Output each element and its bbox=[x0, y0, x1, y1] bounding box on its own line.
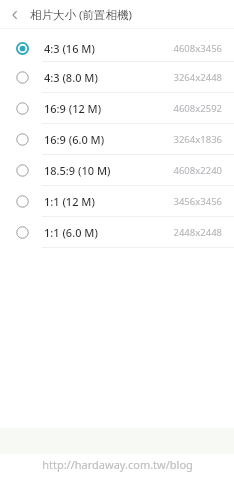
button[interactable]: 1:1 (12 M) bbox=[0, 186, 234, 217]
staticText: 4:3 (16 M) bbox=[44, 41, 95, 56]
button[interactable]: 16:9 (6.0 M) bbox=[0, 124, 234, 155]
staticText: 4608x3456 bbox=[173, 42, 222, 55]
staticText: 3264x2448 bbox=[173, 71, 222, 84]
staticText: 3456x3456 bbox=[173, 195, 222, 208]
staticText: 18.5:9 (10 M) bbox=[44, 163, 111, 178]
staticText: 2448x2448 bbox=[173, 226, 222, 239]
staticText: 4:3 (8.0 M) bbox=[44, 70, 98, 85]
staticText: 3264x1836 bbox=[173, 133, 222, 146]
button[interactable]: 18.5:9 (10 M) bbox=[0, 155, 234, 186]
staticText: 1:1 (12 M) bbox=[44, 194, 95, 209]
button[interactable]: 4:3 (8.0 M) bbox=[0, 62, 234, 93]
button[interactable]: 4:3 (16 M) bbox=[0, 35, 234, 62]
staticText: http://hardaway.com.tw/blog bbox=[42, 457, 193, 472]
button[interactable]: 16:9 (12 M) bbox=[0, 93, 234, 124]
staticText: 1:1 (6.0 M) bbox=[44, 225, 98, 240]
staticText: 16:9 (12 M) bbox=[44, 101, 102, 116]
staticText: 16:9 (6.0 M) bbox=[44, 132, 105, 147]
button[interactable]: 1:1 (6.0 M) bbox=[0, 217, 234, 248]
staticText: 相片大小 (前置相機) bbox=[30, 7, 132, 23]
staticText: 4608x2592 bbox=[173, 102, 222, 115]
staticText: 4608x2240 bbox=[173, 164, 222, 177]
button[interactable]: Back bbox=[0, 0, 30, 29]
